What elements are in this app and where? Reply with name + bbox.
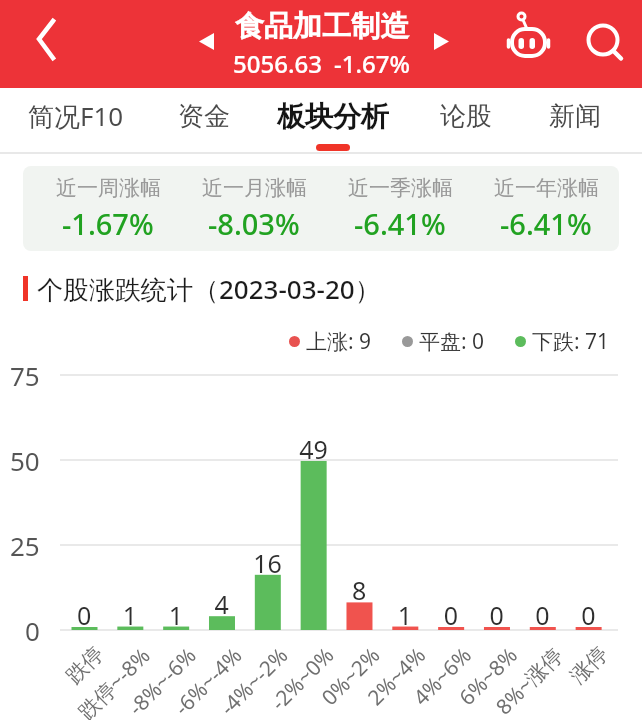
- staticText: -1.67%: [334, 47, 410, 80]
- staticText: 论股: [440, 100, 492, 133]
- button[interactable]: 资金: [164, 88, 244, 154]
- staticText: 个股涨跌统计（2023-03-20）: [37, 271, 381, 305]
- button[interactable]: [578, 12, 630, 72]
- button[interactable]: 新闻: [535, 88, 615, 154]
- button[interactable]: [184, 20, 228, 66]
- staticText: -8.03%: [208, 204, 300, 243]
- staticText: 上涨: 9: [306, 327, 372, 356]
- button[interactable]: 简况F10: [16, 88, 136, 154]
- button[interactable]: [0, 0, 72, 88]
- staticText: 近一月涨幅: [202, 175, 307, 201]
- staticText: 近一年涨幅: [494, 175, 599, 201]
- staticText: 食品加工制造: [235, 8, 409, 45]
- button[interactable]: 论股: [426, 88, 506, 154]
- staticText: 近一季涨幅: [348, 175, 453, 201]
- staticText: -6.41%: [354, 204, 446, 243]
- button[interactable]: [420, 20, 464, 66]
- staticText: -1.67%: [62, 204, 154, 243]
- staticText: 5056.63: [233, 47, 322, 80]
- staticText: -6.41%: [500, 204, 592, 243]
- button[interactable]: 板块分析: [268, 88, 398, 154]
- staticText: 近一周涨幅: [56, 175, 161, 201]
- staticText: 新闻: [549, 100, 601, 133]
- button[interactable]: [499, 8, 557, 74]
- staticText: 简况F10: [28, 98, 124, 134]
- staticText: 板块分析: [277, 99, 389, 134]
- staticText: 下跌: 71: [532, 327, 610, 356]
- staticText: 资金: [178, 100, 230, 133]
- staticText: 平盘: 0: [419, 327, 485, 356]
